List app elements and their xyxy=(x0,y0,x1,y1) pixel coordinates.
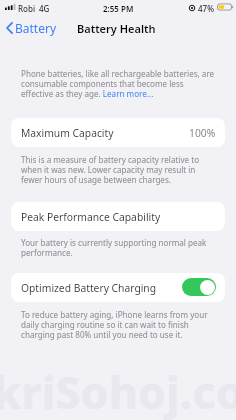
staticText: Battery xyxy=(15,20,57,36)
staticText: Phone batteries, like all rechargeable b… xyxy=(21,68,218,100)
button[interactable]: Battery xyxy=(3,17,60,39)
button[interactable]: Peak Performance Capability xyxy=(11,202,225,231)
button[interactable]: Maximum Capacity xyxy=(11,118,225,147)
staticText: To reduce battery aging, iPhone learns f… xyxy=(21,309,212,341)
staticText: 4G xyxy=(39,3,50,14)
staticText: Your battery is currently supporting nor… xyxy=(21,237,212,259)
staticText: Peak Performance Capability xyxy=(21,210,161,224)
button[interactable]: Optimized Battery Charging xyxy=(11,273,225,302)
staticText: Robi xyxy=(18,3,36,14)
staticText: 100% xyxy=(189,126,216,140)
staticText: 47% xyxy=(198,3,214,14)
button[interactable]: Optimized Battery Charging toggle xyxy=(182,278,216,296)
staticText: This is a measure of battery capacity re… xyxy=(21,154,212,186)
staticText: 2:55 PM xyxy=(103,3,134,14)
staticText: kriSohoj.co xyxy=(0,361,236,420)
staticText: Optimized Battery Charging xyxy=(21,281,157,295)
staticText: Maximum Capacity xyxy=(21,126,114,140)
staticText: Battery Health xyxy=(77,21,156,36)
